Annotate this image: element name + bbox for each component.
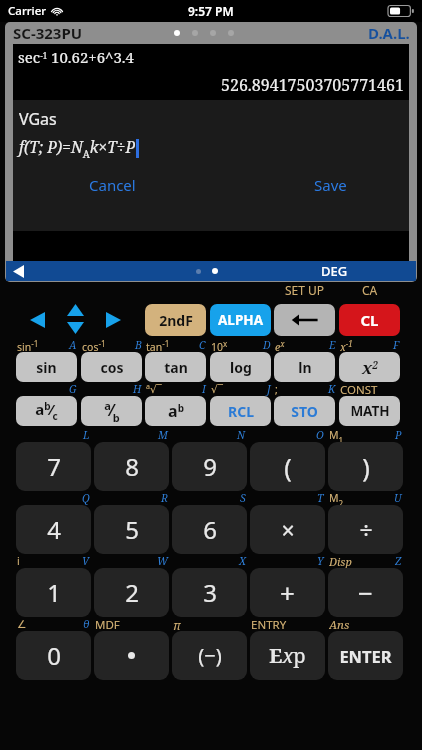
button[interactable]: ALPHA bbox=[210, 304, 271, 336]
button[interactable]: Previous bbox=[13, 265, 24, 278]
button[interactable]: 4 bbox=[16, 505, 91, 554]
staticText: ÷ bbox=[359, 514, 373, 545]
staticText: sin bbox=[36, 358, 57, 377]
staticText: sec-1 10.62+6^3.4 bbox=[18, 47, 134, 67]
staticText: T bbox=[317, 491, 324, 505]
staticText: M bbox=[158, 428, 168, 442]
button[interactable]: Right bbox=[106, 312, 121, 328]
button[interactable]: a⁄b bbox=[81, 396, 142, 426]
staticText: CONST bbox=[340, 382, 378, 396]
staticText: Save bbox=[314, 175, 347, 195]
button[interactable]: cos bbox=[81, 352, 142, 382]
button[interactable]: 1 bbox=[16, 568, 91, 617]
staticText: ( bbox=[284, 450, 292, 484]
button[interactable]: STO bbox=[274, 396, 335, 426]
staticText: 9 bbox=[203, 450, 217, 483]
button[interactable]: 5 bbox=[94, 505, 169, 554]
button[interactable]: 0 bbox=[16, 631, 91, 680]
button[interactable]: × bbox=[250, 505, 325, 554]
staticText: × bbox=[281, 514, 295, 545]
button[interactable]: sin bbox=[16, 352, 77, 382]
staticText: MDF bbox=[95, 617, 120, 631]
staticText: 1 bbox=[47, 576, 61, 609]
staticText: ln bbox=[298, 358, 312, 377]
staticText: 10x bbox=[211, 338, 228, 352]
button[interactable]: Save bbox=[211, 173, 409, 197]
button[interactable]: Up and down bbox=[67, 304, 84, 334]
staticText: ENTER bbox=[339, 645, 392, 667]
button[interactable]: 3 bbox=[172, 568, 247, 617]
staticText: x-1 bbox=[340, 338, 353, 352]
button[interactable]: ln bbox=[274, 352, 335, 382]
staticText: θ bbox=[83, 617, 90, 631]
staticText: F bbox=[393, 338, 400, 352]
button[interactable]: Decimal point bbox=[94, 631, 169, 680]
button[interactable]: − bbox=[328, 568, 403, 617]
button[interactable]: Left bbox=[30, 312, 45, 328]
button[interactable]: RCL bbox=[210, 396, 271, 426]
staticText: log bbox=[230, 358, 252, 377]
staticText: Exp bbox=[269, 642, 306, 669]
button[interactable]: CL bbox=[339, 304, 400, 336]
staticText: U bbox=[394, 491, 402, 505]
button[interactable]: 6 bbox=[172, 505, 247, 554]
button[interactable]: ÷ bbox=[328, 505, 403, 554]
staticText: ab⁄c bbox=[35, 399, 58, 423]
staticText: G bbox=[69, 382, 77, 396]
button[interactable]: Exp bbox=[250, 631, 325, 680]
button[interactable]: 2 bbox=[94, 568, 169, 617]
staticText: D.A.L. bbox=[368, 23, 410, 43]
staticText: H bbox=[133, 382, 142, 396]
button[interactable]: 9 bbox=[172, 442, 247, 491]
staticText: DEG bbox=[321, 262, 348, 280]
button[interactable]: tan bbox=[145, 352, 206, 382]
button[interactable]: + bbox=[250, 568, 325, 617]
staticText: 7 bbox=[47, 450, 61, 483]
staticText: O bbox=[316, 428, 324, 442]
button[interactable]: MATH bbox=[339, 396, 400, 426]
staticText: RCL bbox=[228, 402, 254, 421]
staticText: a√‾ bbox=[146, 382, 162, 396]
button[interactable]: ab bbox=[145, 396, 206, 426]
staticText: X bbox=[239, 554, 246, 568]
button[interactable]: ab⁄c bbox=[16, 396, 77, 426]
staticText: cos-1 bbox=[82, 338, 106, 352]
staticText: Z bbox=[395, 554, 402, 568]
staticText: 8 bbox=[125, 450, 139, 483]
staticText: I bbox=[202, 382, 206, 396]
staticText: ab bbox=[168, 400, 184, 422]
staticText: 0 bbox=[47, 639, 61, 672]
button[interactable]: ) bbox=[328, 442, 403, 491]
staticText: √‾ bbox=[211, 382, 223, 396]
button[interactable]: ( bbox=[250, 442, 325, 491]
button[interactable]: ENTER bbox=[328, 631, 403, 680]
button[interactable]: 8 bbox=[94, 442, 169, 491]
staticText: STO bbox=[291, 402, 318, 421]
staticText: 3 bbox=[203, 576, 217, 609]
button[interactable]: x2 bbox=[339, 352, 400, 382]
staticText: ) bbox=[362, 450, 370, 484]
staticText: i bbox=[17, 554, 20, 568]
staticText: E bbox=[329, 338, 336, 352]
button[interactable]: log bbox=[210, 352, 271, 382]
staticText: SET UP bbox=[285, 282, 325, 298]
staticText: M1 bbox=[329, 428, 344, 442]
staticText: P bbox=[395, 428, 402, 442]
staticText: C bbox=[199, 338, 206, 352]
button[interactable]: Backspace bbox=[274, 304, 335, 336]
staticText: MATH bbox=[350, 402, 390, 420]
staticText: f(T; P)=NAk×T÷P bbox=[19, 136, 136, 161]
staticText: Cancel bbox=[89, 175, 136, 195]
button[interactable]: 2ndF bbox=[145, 304, 206, 336]
staticText: ex bbox=[275, 338, 285, 352]
staticText: Disp bbox=[329, 554, 352, 568]
button[interactable]: Cancel bbox=[13, 173, 211, 197]
staticText: SC-323PU bbox=[13, 23, 83, 43]
staticText: W bbox=[157, 554, 168, 568]
button[interactable]: (−) bbox=[172, 631, 247, 680]
staticText: CA bbox=[362, 282, 378, 298]
staticText: ALPHA bbox=[218, 311, 263, 329]
button[interactable]: 7 bbox=[16, 442, 91, 491]
staticText: 526.89417503705771461 bbox=[221, 74, 404, 96]
staticText: 5 bbox=[125, 513, 139, 546]
